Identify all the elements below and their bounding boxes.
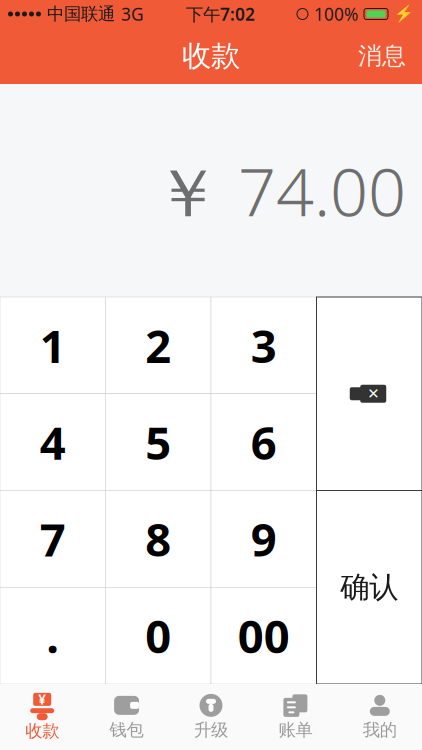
staticText: 消息 xyxy=(358,41,406,71)
button[interactable]: . xyxy=(0,587,105,684)
button[interactable]: 8 xyxy=(105,490,211,587)
button[interactable]: 2 xyxy=(105,297,211,394)
staticText: 账单 xyxy=(278,719,312,741)
staticText: 收款 xyxy=(25,720,59,742)
staticText: ✕ xyxy=(367,385,379,402)
button[interactable]: 升级 xyxy=(169,684,253,750)
button[interactable]: 1 xyxy=(0,297,105,394)
staticText: ¥ xyxy=(38,690,46,708)
staticText: 00 xyxy=(238,605,290,666)
staticText: 升级 xyxy=(194,719,228,741)
button[interactable]: 6 xyxy=(211,394,316,491)
button[interactable]: 3 xyxy=(211,297,316,394)
button[interactable]: 我的 xyxy=(338,684,422,750)
staticText: 1 xyxy=(40,315,66,375)
button[interactable]: 7 xyxy=(0,490,105,587)
staticText: 9 xyxy=(251,509,277,569)
staticText: . xyxy=(46,605,59,666)
staticText: 2 xyxy=(145,315,171,375)
staticText: 中国联通 xyxy=(47,3,115,25)
button[interactable]: 消息 xyxy=(342,28,422,84)
staticText: 8 xyxy=(145,509,171,569)
staticText: 3 xyxy=(251,315,277,375)
button[interactable]: 4 xyxy=(0,394,105,491)
staticText: 3G xyxy=(121,2,144,25)
button[interactable]: 确认 xyxy=(316,490,422,684)
staticText: 4 xyxy=(40,412,66,472)
button[interactable]: 5 xyxy=(105,394,211,491)
button[interactable]: 0 xyxy=(105,587,211,684)
staticText: 下午7:02 xyxy=(186,2,255,25)
staticText: 5 xyxy=(145,412,171,472)
staticText: 确认 xyxy=(340,569,398,605)
staticText: 6 xyxy=(251,412,277,472)
button[interactable]: 钱包 xyxy=(84,684,169,750)
button[interactable]: 9 xyxy=(211,490,316,587)
staticText: ￥ 74.00 xyxy=(154,146,406,235)
staticText: 钱包 xyxy=(110,719,144,741)
staticText: ⚡ xyxy=(394,5,414,23)
button[interactable]: 删除 xyxy=(316,297,422,490)
staticText: 0 xyxy=(145,605,171,666)
button[interactable]: 00 xyxy=(211,587,316,684)
staticText: 7 xyxy=(40,509,66,569)
button[interactable]: 账单 xyxy=(253,684,338,750)
staticText: 收款 xyxy=(182,38,240,74)
staticText: 我的 xyxy=(363,719,397,741)
button[interactable]: ¥ xyxy=(0,684,84,750)
staticText: 100% xyxy=(314,2,358,25)
